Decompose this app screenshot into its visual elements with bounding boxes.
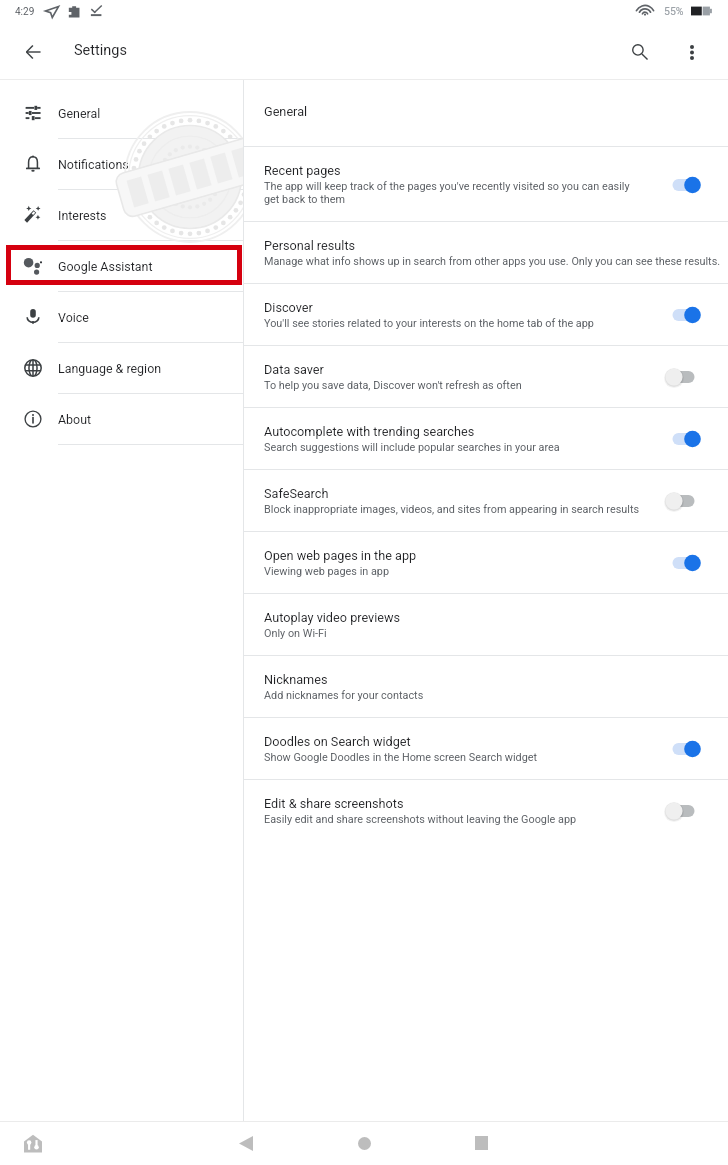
button[interactable]: Doodles on Search widget	[244, 718, 728, 779]
staticText: Recent pages	[264, 163, 341, 178]
staticText: Notifications	[58, 157, 129, 172]
button[interactable]: Recents	[461, 1123, 501, 1163]
staticText: Block inappropriate images, videos, and …	[264, 503, 640, 516]
button[interactable]: Edit & share screenshots	[662, 789, 705, 832]
button[interactable]: Recent pages	[244, 147, 728, 221]
staticText: Viewing web pages in app	[264, 565, 390, 578]
button[interactable]: General	[0, 88, 243, 139]
staticText: Only on Wi-Fi	[264, 627, 327, 640]
button[interactable]: Back	[226, 1123, 266, 1163]
button[interactable]: Language & region	[0, 343, 243, 394]
button[interactable]: Data saver	[662, 355, 705, 398]
button[interactable]: SafeSearch	[244, 470, 728, 531]
button[interactable]: Autocomplete with trending searches	[662, 417, 705, 460]
button[interactable]: Discover	[662, 293, 705, 336]
staticText: get back to them	[264, 193, 346, 206]
button[interactable]: Recent pages	[662, 163, 705, 206]
staticText: Data saver	[264, 362, 324, 377]
button[interactable]: Data saver	[244, 346, 728, 407]
staticText: Voice	[58, 310, 89, 325]
button[interactable]: Open web pages in the app	[244, 532, 728, 593]
staticText: General	[58, 106, 101, 121]
staticText: Open web pages in the app	[264, 548, 417, 563]
button[interactable]: Google Assistant	[0, 241, 243, 292]
button[interactable]: Assistant home	[14, 1124, 51, 1162]
button[interactable]: Interests	[0, 190, 243, 241]
button[interactable]: SafeSearch	[662, 479, 705, 522]
staticText: 4:29	[15, 6, 35, 18]
staticText: Discover	[264, 300, 313, 315]
button[interactable]: Notifications	[0, 139, 243, 190]
staticText: Show Google Doodles in the Home screen S…	[264, 751, 538, 764]
button[interactable]: Voice	[0, 292, 243, 343]
staticText: Interests	[58, 208, 107, 223]
staticText: Manage what info shows up in search from…	[264, 255, 721, 268]
button[interactable]: Home	[344, 1123, 384, 1163]
button[interactable]: About	[0, 394, 243, 445]
button[interactable]: Autocomplete with trending searches	[244, 408, 728, 469]
staticText: Easily edit and share screenshots withou…	[264, 813, 577, 826]
button[interactable]: Search	[616, 28, 664, 76]
button[interactable]: Personal results	[244, 222, 728, 283]
staticText: Personal results	[264, 238, 356, 253]
staticText: 55%	[664, 5, 684, 17]
button[interactable]: Discover	[244, 284, 728, 345]
staticText: Google Assistant	[58, 259, 153, 274]
button[interactable]: More options	[668, 28, 716, 76]
staticText: The app will keep track of the pages you…	[264, 180, 630, 193]
staticText: To help you save data, Discover won't re…	[264, 379, 522, 392]
staticText: SafeSearch	[264, 486, 329, 501]
button[interactable]: Nicknames	[244, 656, 728, 717]
button[interactable]: Back	[9, 28, 57, 76]
staticText: Search suggestions will include popular …	[264, 441, 560, 454]
button[interactable]: Open web pages in the app	[662, 541, 705, 584]
staticText: Autocomplete with trending searches	[264, 424, 475, 439]
staticText: General	[264, 104, 308, 119]
staticText: Autoplay video previews	[264, 610, 401, 625]
staticText: Nicknames	[264, 672, 328, 687]
staticText: Settings	[74, 42, 127, 59]
button[interactable]: Edit & share screenshots	[244, 780, 728, 841]
staticText: Edit & share screenshots	[264, 796, 404, 811]
staticText: About	[58, 412, 92, 427]
staticText: You'll see stories related to your inter…	[264, 317, 594, 330]
button[interactable]: Doodles on Search widget	[662, 727, 705, 770]
staticText: Add nicknames for your contacts	[264, 689, 424, 702]
staticText: Language & region	[58, 361, 162, 376]
button[interactable]: Autoplay video previews	[244, 594, 728, 655]
staticText: Doodles on Search widget	[264, 734, 411, 749]
